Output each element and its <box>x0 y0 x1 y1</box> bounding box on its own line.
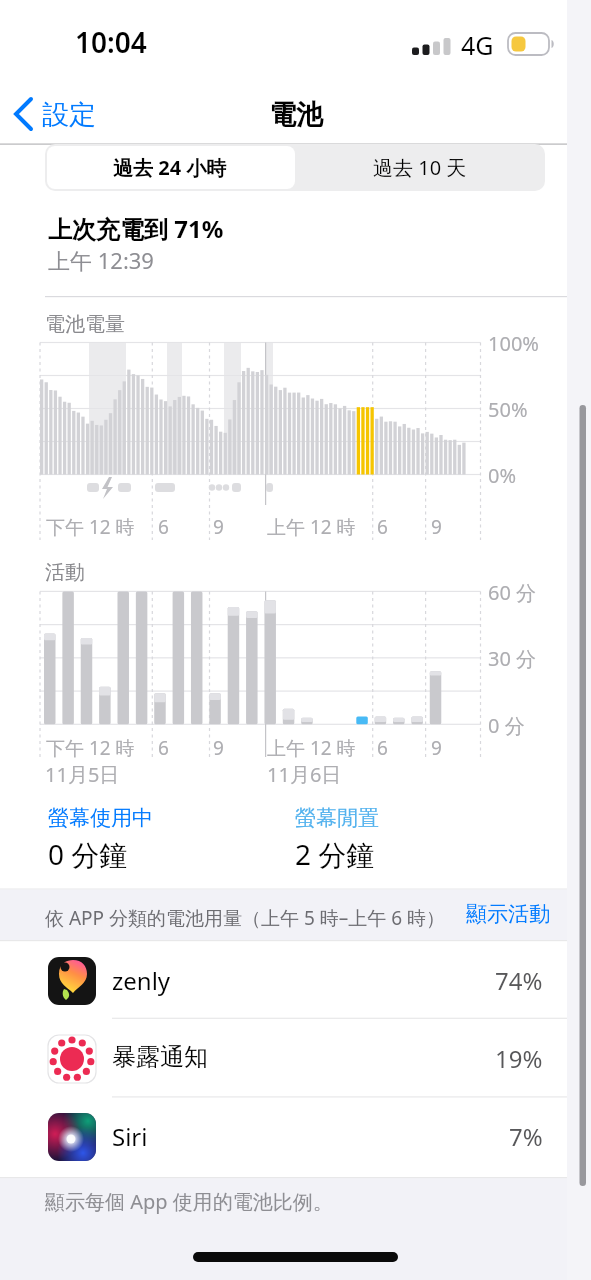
staticText: 上午 12:39 <box>48 245 154 275</box>
staticText: 電池電量 <box>45 312 125 337</box>
staticText: 過去 24 小時 <box>113 154 227 181</box>
staticText: zenly <box>112 964 171 997</box>
staticText: 50% <box>488 396 528 423</box>
staticText: 6 <box>158 514 169 540</box>
staticText: 9 <box>431 735 442 761</box>
staticText: 2 分鐘 <box>295 835 375 873</box>
staticText: 下午 12 時 <box>46 735 135 761</box>
staticText: 74% <box>495 964 543 997</box>
staticText: 4G <box>461 28 494 62</box>
staticText: 7% <box>509 1120 543 1153</box>
button[interactable] <box>8 92 108 136</box>
button[interactable] <box>0 1018 591 1096</box>
staticText: 上次充電到 71% <box>48 212 224 245</box>
button[interactable]: 顯示活動 <box>425 898 550 930</box>
staticText: 11月6日 <box>267 761 342 788</box>
staticText: 9 <box>213 514 224 540</box>
staticText: 9 <box>213 735 224 761</box>
staticText: 螢幕閒置 <box>295 805 379 831</box>
staticText: 電池 <box>269 98 323 132</box>
staticText: 6 <box>158 735 169 761</box>
staticText: 螢幕使用中 <box>48 805 153 831</box>
staticText: 過去 10 天 <box>373 154 467 181</box>
staticText: 100% <box>488 330 539 357</box>
staticText: 30 分 <box>488 645 537 672</box>
staticText: 6 <box>377 735 388 761</box>
staticText: 0 分 <box>488 712 525 739</box>
staticText: 下午 12 時 <box>46 514 135 540</box>
staticText: 6 <box>377 514 388 540</box>
staticText: Siri <box>112 1120 148 1153</box>
button[interactable] <box>0 1096 591 1177</box>
staticText: 設定 <box>42 98 96 132</box>
staticText: 上午 12 時 <box>267 735 356 761</box>
staticText: 上午 12 時 <box>267 514 356 540</box>
staticText: 9 <box>431 514 442 540</box>
staticText: 活動 <box>45 560 85 585</box>
staticText: 依 APP 分類的電池用量（上午 5 時–上午 6 時） <box>45 905 446 931</box>
staticText: 60 分 <box>488 579 537 606</box>
staticText: 顯示活動 <box>466 901 550 927</box>
staticText: 0% <box>488 462 517 489</box>
button[interactable]: 過去 24 小時 <box>45 144 295 191</box>
staticText: 10:04 <box>75 23 147 61</box>
staticText: 顯示每個 App 使用的電池比例。 <box>45 1188 333 1215</box>
staticText: 11月5日 <box>45 761 120 788</box>
staticText: 暴露通知 <box>112 1042 208 1072</box>
staticText: 0 分鐘 <box>48 835 128 873</box>
button[interactable]: 過去 10 天 <box>295 144 545 191</box>
staticText: 19% <box>495 1042 543 1075</box>
button[interactable] <box>0 941 591 1018</box>
